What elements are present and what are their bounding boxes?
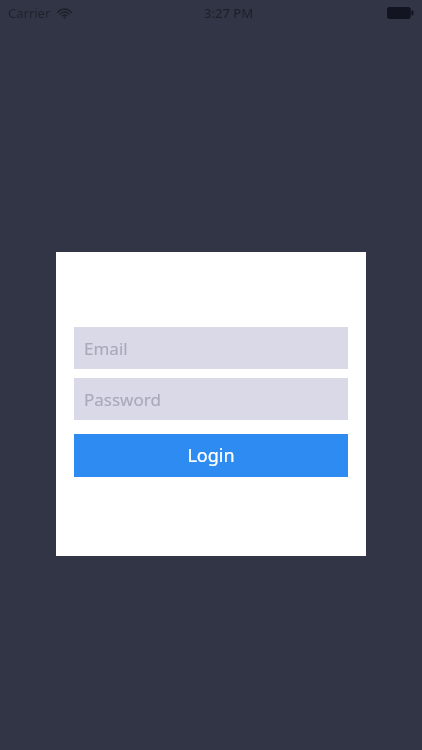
button[interactable]: Password xyxy=(74,378,348,420)
staticText: 3:27 PM xyxy=(204,4,254,22)
staticText: Carrier xyxy=(8,4,51,22)
staticText: Login xyxy=(187,443,235,468)
button[interactable]: Login xyxy=(74,434,348,477)
button[interactable]: Email xyxy=(74,327,348,369)
staticText: Email xyxy=(84,337,128,360)
staticText: Password xyxy=(84,388,161,411)
